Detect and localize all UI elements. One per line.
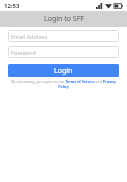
staticText: 12:53 [4,2,20,10]
button[interactable]: Password [8,46,119,58]
staticText: Login to SFF [44,14,84,24]
staticText: Email Address [11,33,48,40]
button[interactable]: By continuing, you agree to our Terms of… [8,79,119,89]
staticText: Login [54,66,73,76]
staticText: Password [11,49,36,56]
button[interactable]: Login [8,64,119,77]
button[interactable]: Email Address [8,30,119,42]
staticText: By continuing, you agree to our Terms of… [8,79,119,89]
